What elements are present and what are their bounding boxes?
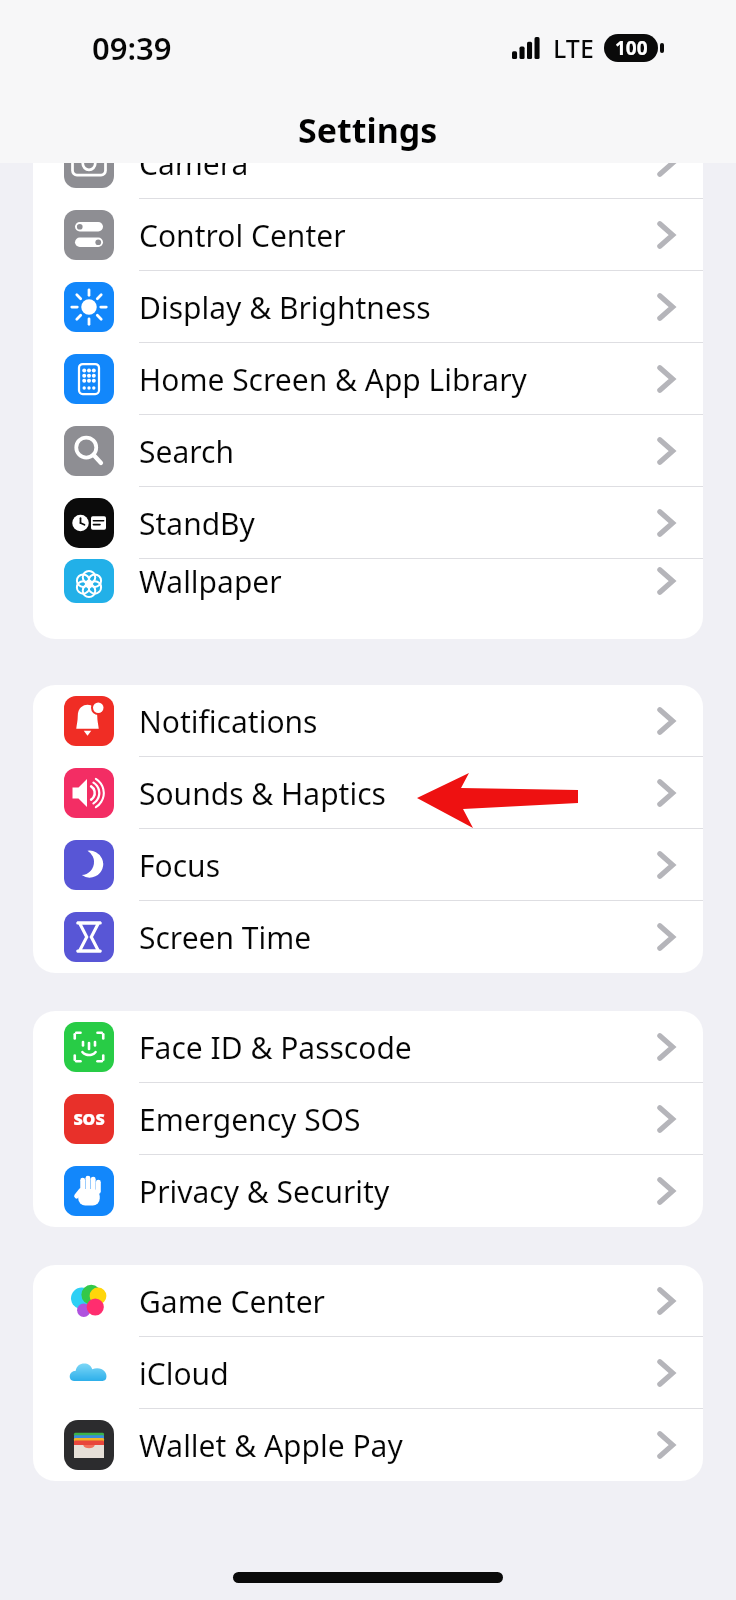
button[interactable]: Screen Time bbox=[33, 901, 703, 973]
staticText: Face ID & Passcode bbox=[139, 1027, 412, 1068]
staticText: Settings bbox=[298, 107, 438, 153]
button[interactable]: Notifications bbox=[33, 685, 703, 757]
button[interactable]: Home Screen & App Library bbox=[33, 343, 703, 415]
staticText: Privacy & Security bbox=[139, 1171, 390, 1212]
staticText: SOS bbox=[73, 1108, 105, 1130]
staticText: iCloud bbox=[139, 1353, 229, 1394]
staticText: Emergency SOS bbox=[139, 1099, 361, 1140]
staticText: 09:39 bbox=[92, 27, 172, 69]
staticText: 100 bbox=[615, 35, 648, 61]
staticText: Control Center bbox=[139, 215, 346, 256]
staticText: Sounds & Haptics bbox=[139, 773, 386, 814]
button[interactable]: StandBy bbox=[33, 487, 703, 559]
button[interactable]: Game Center bbox=[33, 1265, 703, 1337]
staticText: Display & Brightness bbox=[139, 287, 431, 328]
button[interactable]: Focus bbox=[33, 829, 703, 901]
button[interactable]: Wallet & Apple Pay bbox=[33, 1409, 703, 1481]
button[interactable]: Display & Brightness bbox=[33, 271, 703, 343]
staticText: Focus bbox=[139, 845, 221, 886]
staticText: Search bbox=[139, 431, 234, 472]
other: Annotation arrow pointing to Sounds & Ha… bbox=[0, 0, 736, 1600]
button[interactable]: Sounds & Haptics bbox=[33, 757, 703, 829]
button[interactable]: Privacy & Security bbox=[33, 1155, 703, 1227]
staticText: Screen Time bbox=[139, 917, 312, 958]
staticText: Notifications bbox=[139, 701, 318, 742]
button[interactable]: Control Center bbox=[33, 199, 703, 271]
staticText: Wallet & Apple Pay bbox=[139, 1425, 403, 1466]
button[interactable]: Face ID & Passcode bbox=[33, 1011, 703, 1083]
button[interactable]: Camera bbox=[33, 163, 703, 199]
staticText: LTE bbox=[553, 31, 594, 65]
staticText: Game Center bbox=[139, 1281, 325, 1322]
staticText: Home Screen & App Library bbox=[139, 359, 527, 400]
button[interactable]: iCloud bbox=[33, 1337, 703, 1409]
button[interactable]: SOS bbox=[33, 1083, 703, 1155]
staticText: Wallpaper bbox=[139, 561, 282, 602]
button[interactable]: Wallpaper bbox=[33, 559, 703, 603]
staticText: Camera bbox=[139, 163, 249, 184]
staticText: StandBy bbox=[139, 503, 255, 544]
button[interactable]: Search bbox=[33, 415, 703, 487]
